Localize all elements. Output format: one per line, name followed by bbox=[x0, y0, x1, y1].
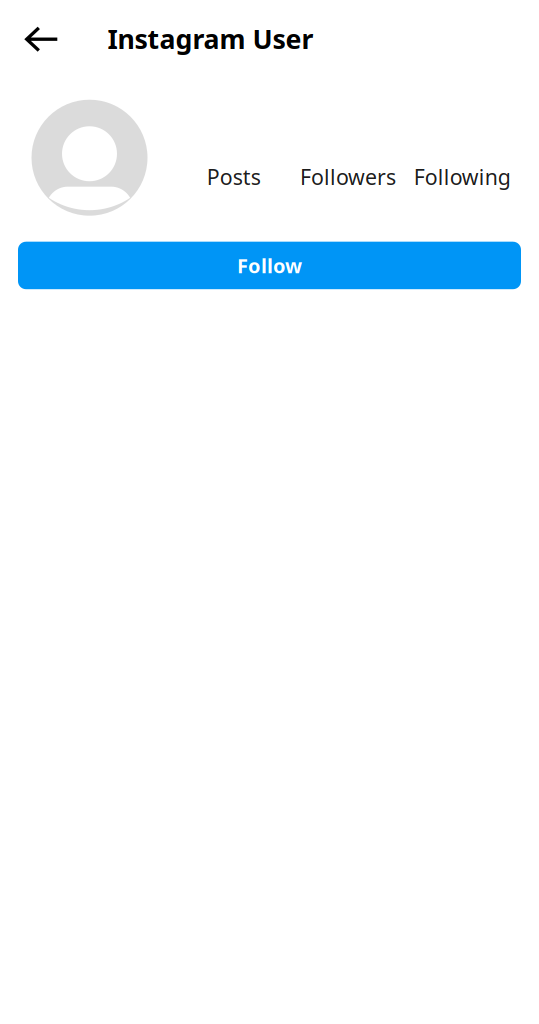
button[interactable]: Posts bbox=[177, 151, 291, 203]
staticText: Follow bbox=[237, 252, 302, 279]
button[interactable]: Back bbox=[16, 13, 68, 65]
staticText: Instagram User bbox=[107, 21, 313, 56]
staticText: Posts bbox=[207, 162, 261, 191]
button[interactable]: Followers bbox=[291, 151, 405, 203]
staticText: Following bbox=[414, 162, 511, 191]
staticText: Followers bbox=[300, 162, 396, 191]
button[interactable]: Follow bbox=[18, 242, 521, 289]
button[interactable]: Following bbox=[405, 151, 519, 203]
